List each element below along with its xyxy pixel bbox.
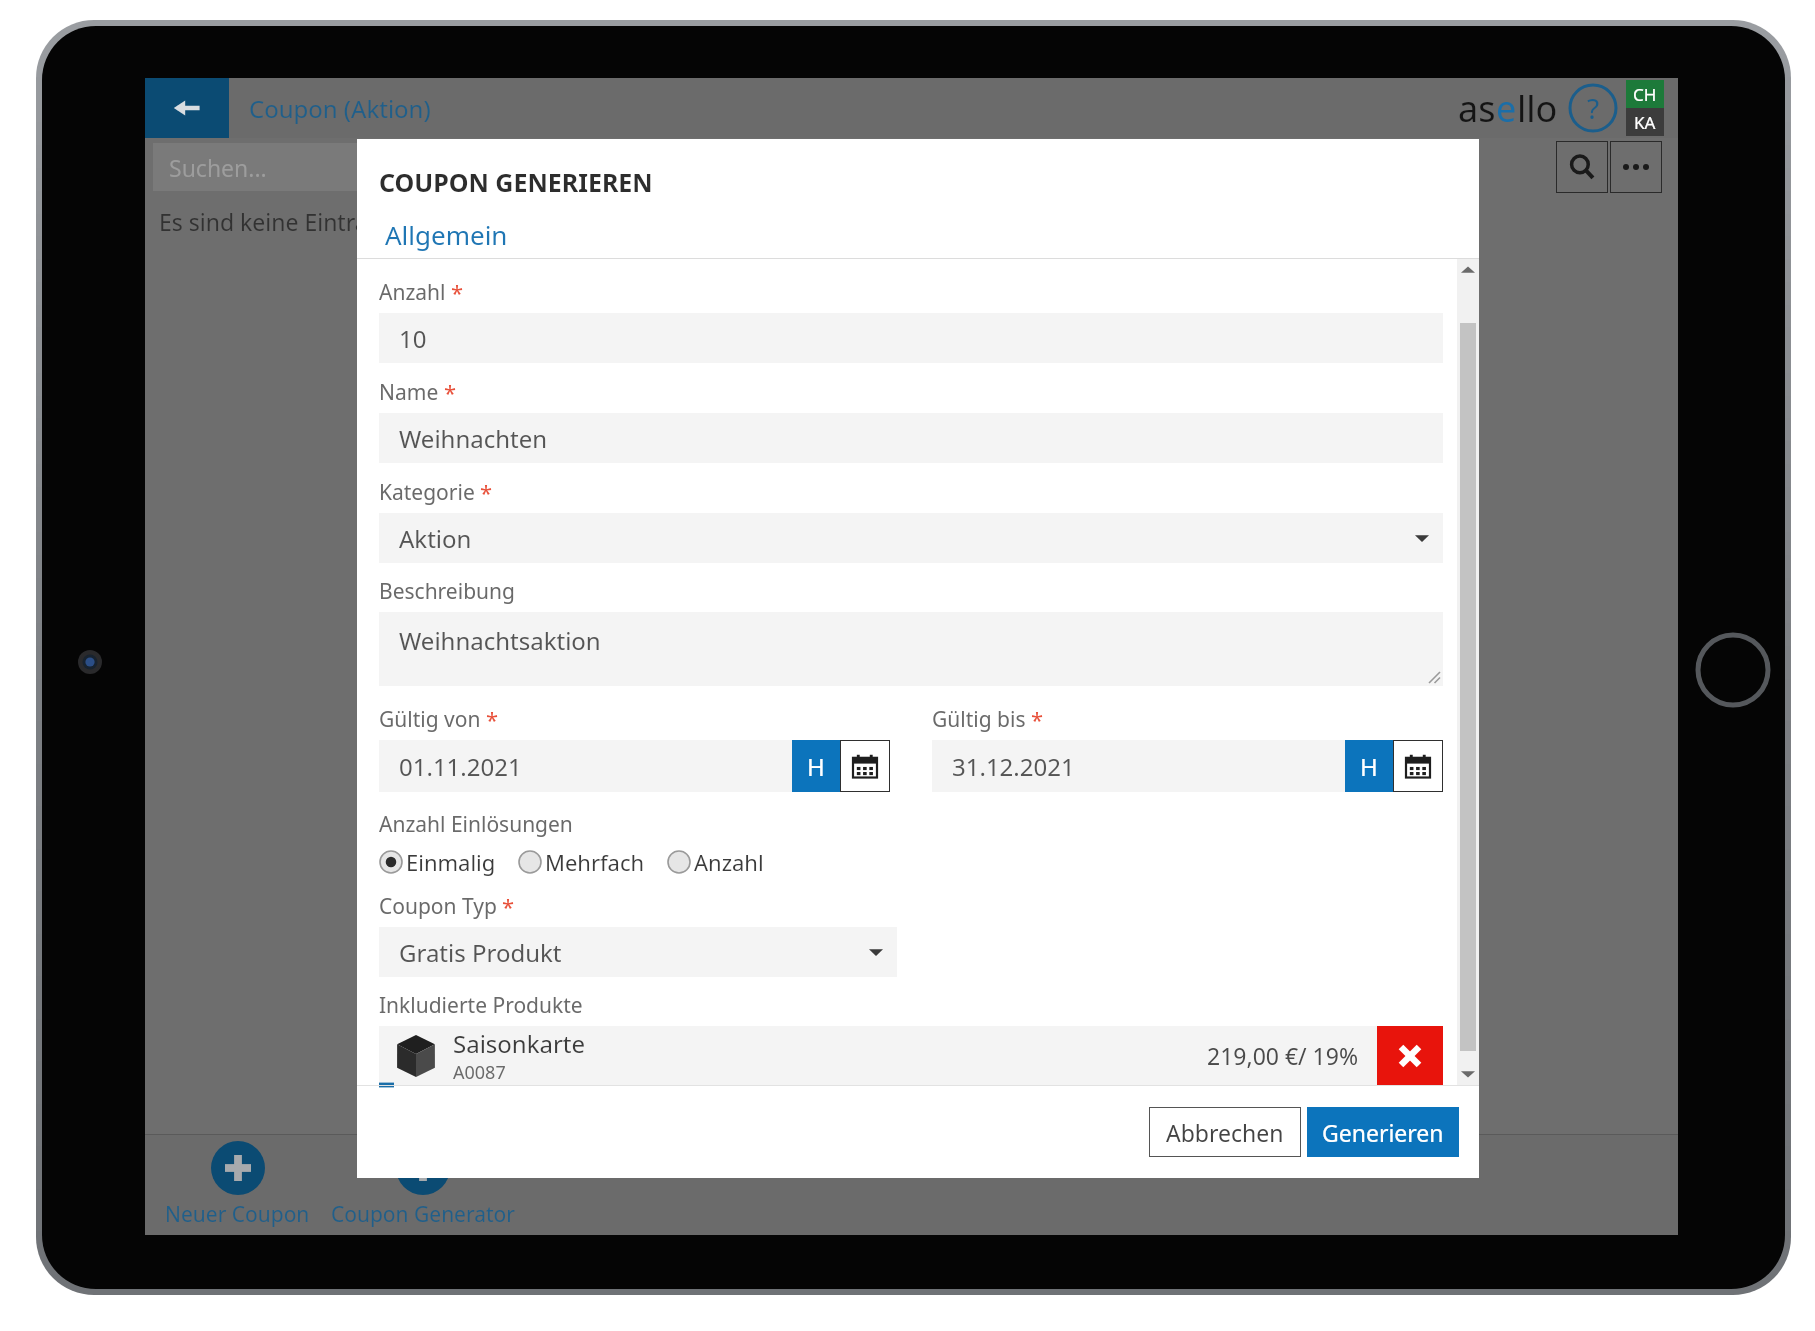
button[interactable]: Anzahl: [667, 847, 764, 877]
button[interactable]: Back: [145, 78, 229, 138]
staticText: Inkludierte Produkte: [379, 991, 583, 1020]
staticText: Suchen...: [169, 152, 267, 183]
staticText: Abbrechen: [1166, 1117, 1284, 1148]
staticText: llo: [1517, 84, 1558, 133]
button[interactable]: Suchen...: [153, 143, 453, 191]
button[interactable]: H: [792, 740, 840, 792]
button[interactable]: Einmalig: [379, 847, 496, 877]
staticText: Weihnachten: [399, 422, 548, 455]
staticText: ?: [1587, 89, 1600, 127]
button[interactable]: Aktion: [379, 513, 1443, 563]
button[interactable]: Weihnachten: [379, 413, 1443, 463]
button[interactable]: Weihnachtsaktion: [379, 612, 1443, 686]
staticText: Coupon (Aktion): [249, 92, 431, 125]
staticText: Gratis Produkt: [399, 936, 562, 969]
button[interactable]: Saisonkarte: [379, 1026, 1377, 1085]
button[interactable]: CH: [1626, 80, 1664, 108]
staticText: Anzahl: [379, 278, 446, 307]
staticText: Beschreibung: [379, 577, 515, 606]
staticText: CH: [1633, 83, 1657, 106]
staticText: Gültig bis: [932, 705, 1026, 734]
staticText: Kategorie: [379, 478, 475, 507]
staticText: Coupon Generator: [331, 1200, 515, 1229]
button[interactable]: Remove product: [1377, 1026, 1443, 1085]
button[interactable]: Gratis Produkt: [379, 927, 897, 977]
staticText: as: [1458, 84, 1496, 133]
staticText: 01.11.2021: [399, 750, 522, 783]
staticText: Coupon Typ: [379, 892, 497, 921]
button[interactable]: Allgemein: [385, 217, 508, 252]
staticText: Name: [379, 378, 439, 407]
staticText: Anzahl: [694, 847, 764, 877]
button[interactable]: 10: [379, 313, 1443, 363]
staticText: *: [444, 377, 457, 407]
staticText: *: [502, 891, 515, 921]
button[interactable]: More options: [1610, 141, 1662, 193]
button[interactable]: Pick date: [1393, 740, 1443, 792]
staticText: Mehrfach: [545, 847, 645, 877]
staticText: 10: [399, 322, 427, 355]
button[interactable]: Mehrfach: [518, 847, 645, 877]
staticText: *: [486, 704, 499, 734]
button[interactable]: Generieren: [1307, 1107, 1459, 1157]
staticText: e: [1496, 84, 1517, 133]
staticText: Generieren: [1322, 1117, 1444, 1148]
button[interactable]: Coupon Generator: [330, 1135, 515, 1235]
staticText: COUPON GENERIEREN: [379, 165, 653, 199]
staticText: 219,00 €/ 19%: [1207, 1040, 1359, 1071]
staticText: Neuer Coupon: [165, 1200, 310, 1229]
staticText: Gültig von: [379, 705, 481, 734]
staticText: H: [1360, 750, 1378, 783]
staticText: 31.12.2021: [952, 750, 1075, 783]
button[interactable]: 31.12.2021: [932, 740, 1345, 792]
button[interactable]: 01.11.2021: [379, 740, 792, 792]
staticText: KA: [1634, 111, 1656, 134]
button[interactable]: Help: [1568, 83, 1618, 133]
button[interactable]: H: [1345, 740, 1393, 792]
staticText: Aktion: [399, 522, 472, 555]
button[interactable]: KA: [1626, 108, 1664, 136]
staticText: *: [480, 477, 493, 507]
staticText: Saisonkarte: [453, 1027, 586, 1060]
staticText: Weihnachtsaktion: [399, 624, 601, 657]
staticText: Einmalig: [406, 847, 496, 877]
staticText: A0087: [453, 1060, 506, 1085]
staticText: H: [807, 750, 825, 783]
staticText: Anzahl Einlösungen: [379, 810, 573, 839]
staticText: *: [1031, 704, 1044, 734]
button[interactable]: Neuer Coupon: [145, 1135, 330, 1235]
staticText: *: [451, 277, 464, 307]
button[interactable]: Pick date: [840, 740, 890, 792]
button[interactable]: Search: [1556, 141, 1608, 193]
button[interactable]: Abbrechen: [1149, 1107, 1301, 1157]
staticText: Es sind keine Einträge vorhanden: [159, 206, 519, 237]
